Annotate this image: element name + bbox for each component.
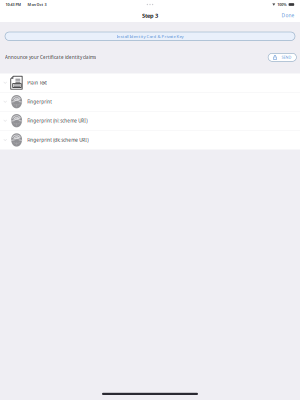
staticText: Done [281,12,294,19]
staticText: Mon Oct 3 [27,2,46,7]
staticText: Fingerprint (dk: scheme URI) [27,137,88,143]
staticText: 10:43 PM [5,2,21,7]
button[interactable]: Fingerprint (dk: scheme URI) [0,130,300,149]
staticText: Plain Text [27,80,47,86]
staticText: SEND [281,55,291,60]
staticText: 100% [277,2,286,7]
button[interactable]: Plain Text [0,73,300,92]
button[interactable]: SEND [268,53,296,61]
staticText: Step 3 [142,12,158,19]
staticText: Fingerprint (ni: scheme URI) [27,118,87,124]
button[interactable]: Done [277,9,298,22]
staticText: Fingerprint [27,99,52,105]
staticText: Install Identity Card & Private Key [116,33,183,39]
staticText: Announce your Certificate identity claim… [5,54,96,60]
button[interactable]: Install Identity Card & Private Key [5,32,295,40]
button[interactable]: Fingerprint [0,92,300,111]
button[interactable]: Fingerprint (ni: scheme URI) [0,111,300,130]
